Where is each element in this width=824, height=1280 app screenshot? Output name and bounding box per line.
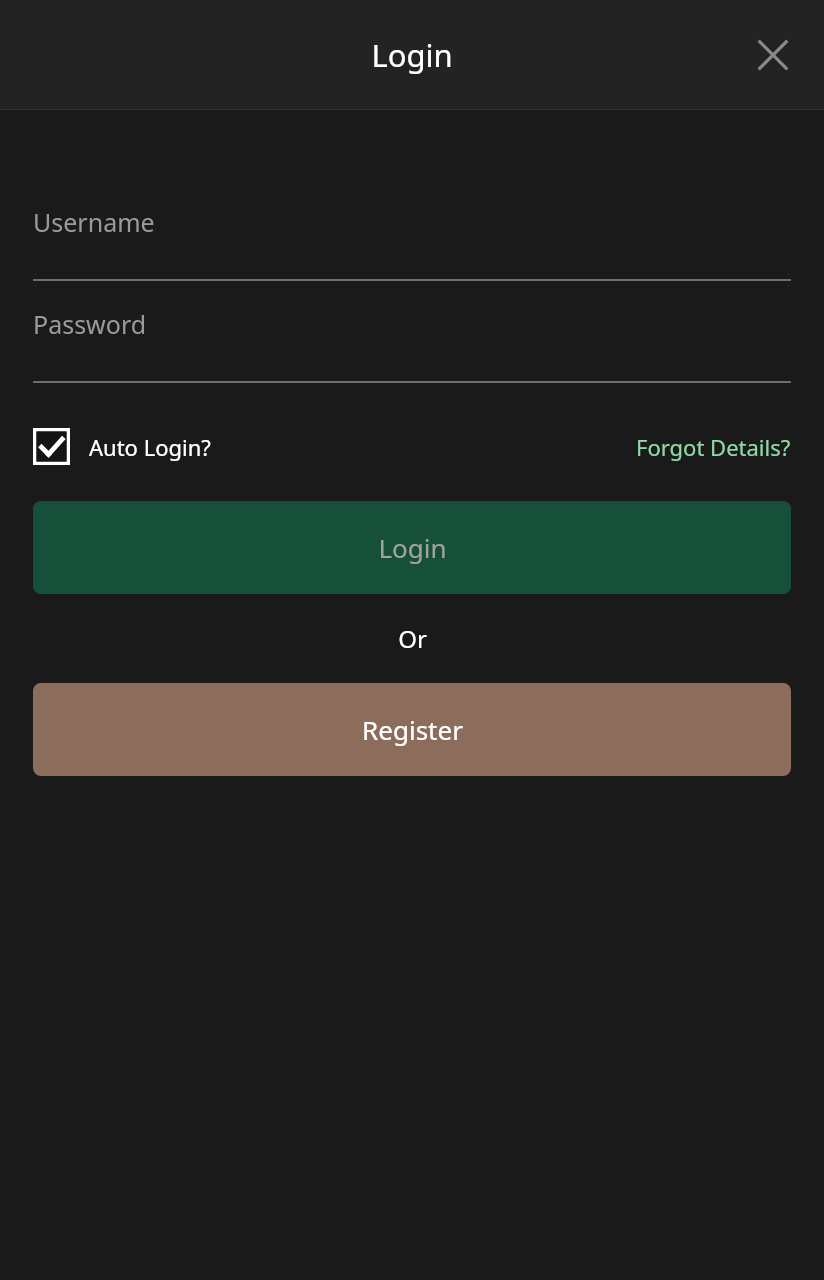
button[interactable]: Login (33, 501, 791, 594)
staticText: Forgot Details? (636, 432, 791, 462)
button[interactable]: Auto Login? (33, 428, 217, 465)
staticText: Password (33, 307, 147, 341)
button[interactable]: Close (744, 26, 802, 84)
staticText: Register (362, 712, 463, 747)
button[interactable]: Password (33, 307, 791, 383)
staticText: Username (33, 205, 155, 239)
staticText: Auto Login? (89, 432, 211, 462)
staticText: Login (371, 34, 453, 76)
staticText: Login (378, 530, 447, 565)
button[interactable]: Register (33, 683, 791, 776)
button[interactable]: Forgot Details? (636, 432, 791, 462)
button[interactable]: Username (33, 205, 791, 281)
staticText: Or (398, 622, 427, 655)
